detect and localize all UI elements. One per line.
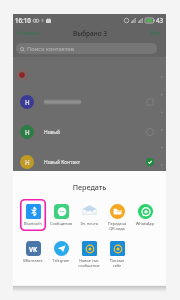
- staticText: H: [25, 98, 30, 106]
- staticText: Новый: [44, 129, 61, 136]
- button[interactable]: H: [13, 147, 166, 177]
- staticText: Bluetooth: [19, 221, 47, 226]
- staticText: WhatsApp: [131, 221, 159, 226]
- staticText: Отмена: [17, 29, 40, 37]
- button[interactable]: VK: [19, 236, 47, 263]
- button[interactable]: Эл. почта: [75, 199, 103, 226]
- staticText: Выбрано 3: [73, 29, 107, 38]
- button[interactable]: Все: [147, 27, 166, 39]
- staticText: Все: [150, 29, 161, 37]
- staticText: 43: [156, 16, 164, 24]
- staticText: 16:10: [15, 16, 31, 24]
- button[interactable]: Bluetooth: [19, 199, 47, 231]
- staticText: ВКонтакте: [19, 258, 47, 263]
- staticText: Эл. почта: [75, 221, 103, 226]
- staticText: Передать: [13, 182, 166, 192]
- button[interactable]: Поиск контактов: [16, 43, 157, 54]
- staticText: Telegram: [47, 258, 75, 263]
- staticText: Новый Контакт: [44, 159, 81, 166]
- button[interactable]: H: [13, 117, 166, 147]
- staticText: Сообщения: [47, 221, 75, 226]
- staticText: Новое смс сообщение: [75, 258, 103, 268]
- button[interactable]: Передача QR-кода: [103, 199, 131, 231]
- staticText: VK: [29, 245, 38, 253]
- button[interactable]: Письмо себе: [103, 236, 131, 268]
- button[interactable]: H: [13, 87, 166, 117]
- staticText: Поиск контактов: [27, 45, 75, 53]
- staticText: Передача QR-кода: [103, 221, 131, 231]
- button[interactable]: Отмена: [13, 27, 43, 39]
- button[interactable]: Сообщения: [47, 199, 75, 226]
- button[interactable]: WhatsApp: [131, 199, 159, 226]
- staticText: H: [25, 158, 30, 166]
- staticText: Письмо себе: [103, 258, 131, 268]
- button[interactable]: Новое смс сообщение: [75, 236, 103, 268]
- button[interactable]: [13, 57, 166, 87]
- button[interactable]: Telegram: [47, 236, 75, 263]
- staticText: H: [25, 128, 30, 136]
